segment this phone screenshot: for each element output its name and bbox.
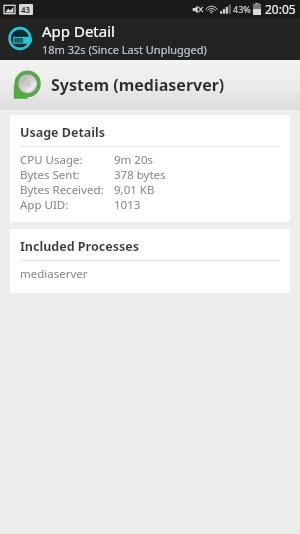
- button[interactable]: System (mediaserver): [0, 60, 300, 110]
- staticText: 9m 20s: [114, 152, 153, 167]
- staticText: Bytes Received:: [20, 182, 104, 197]
- staticText: mediaserver: [20, 266, 88, 282]
- staticText: Included Processes: [20, 238, 139, 255]
- staticText: Bytes Sent:: [20, 167, 80, 182]
- button[interactable]: App Detail: [0, 18, 300, 60]
- staticText: 1013: [114, 197, 141, 212]
- button[interactable]: mediaserver: [20, 266, 280, 282]
- staticText: 378 bytes: [114, 167, 166, 182]
- staticText: 43: [21, 4, 31, 15]
- staticText: 43%: [233, 3, 251, 15]
- staticText: 20:05: [265, 1, 296, 17]
- staticText: Usage Details: [20, 124, 106, 141]
- staticText: System (mediaserver): [51, 74, 225, 96]
- staticText: CPU Usage:: [20, 152, 83, 167]
- staticText: App UID:: [20, 197, 69, 212]
- staticText: App Detail: [42, 21, 115, 41]
- staticText: 18m 32s (Since Last Unplugged): [42, 42, 207, 57]
- staticText: 9,01 KB: [114, 182, 155, 197]
